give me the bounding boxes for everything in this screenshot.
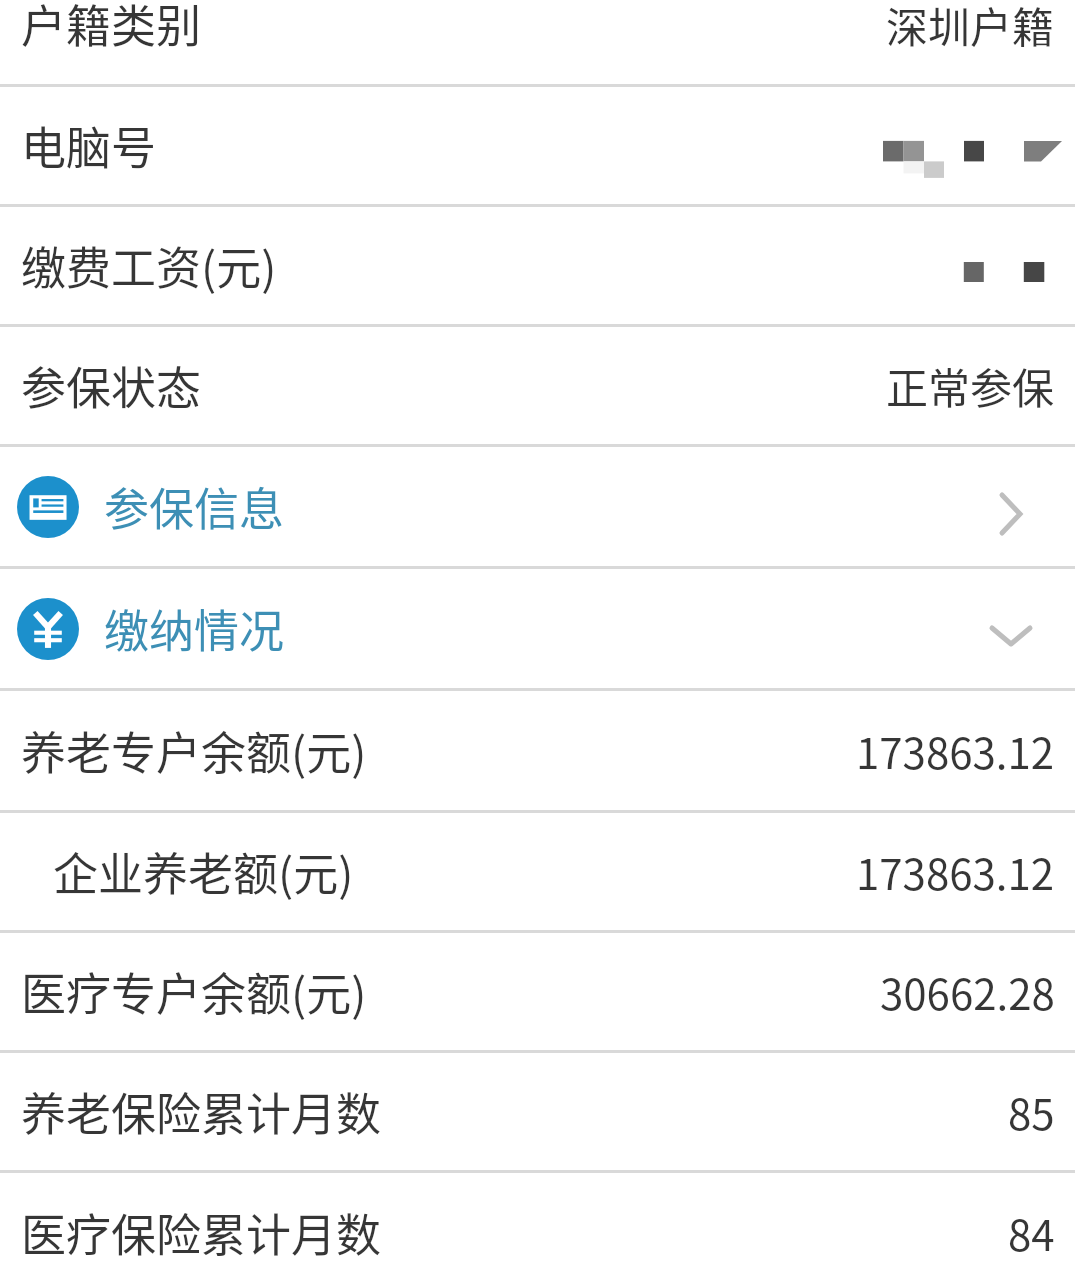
staticText: 企业养老额(元) (53, 839, 354, 904)
button[interactable]: 缴纳情况 (0, 569, 1075, 688)
other: 展开 (978, 474, 1044, 540)
staticText: 正常参保 (886, 355, 1055, 416)
other: 收起 (978, 596, 1044, 662)
staticText: 173863.12 (856, 841, 1055, 902)
staticText: 85 (1008, 1081, 1055, 1142)
button[interactable]: 医疗专户余额(元) (0, 933, 1075, 1050)
button[interactable]: 缴费工资(元) (0, 207, 1075, 324)
button[interactable]: 参保状态 (0, 327, 1075, 444)
staticText: 缴纳情况 (104, 596, 285, 661)
staticText: 缴费工资(元) (21, 233, 277, 298)
button[interactable]: 养老保险累计月数 (0, 1053, 1075, 1170)
staticText: 养老专户余额(元) (21, 718, 367, 783)
staticText: 养老保险累计月数 (21, 1079, 382, 1144)
button[interactable]: 养老专户余额(元) (0, 691, 1075, 810)
staticText: 参保状态 (21, 353, 202, 418)
staticText: 医疗保险累计月数 (21, 1200, 382, 1265)
button[interactable]: 参保信息 (0, 447, 1075, 566)
staticText: 参保信息 (104, 474, 285, 539)
staticText: 户籍类别 (21, 0, 202, 56)
button[interactable]: 企业养老额(元) (0, 813, 1075, 930)
staticText: 深圳户籍 (886, 0, 1055, 55)
button[interactable]: 电脑号 (0, 87, 1075, 204)
staticText: 84 (1008, 1202, 1055, 1263)
staticText: 医疗专户余额(元) (21, 959, 367, 1024)
button[interactable]: 医疗保险累计月数 (0, 1173, 1075, 1267)
staticText: 30662.28 (880, 961, 1055, 1022)
button[interactable]: 户籍类别 (0, 0, 1075, 84)
staticText: 电脑号 (21, 113, 157, 178)
staticText: 173863.12 (856, 720, 1055, 781)
